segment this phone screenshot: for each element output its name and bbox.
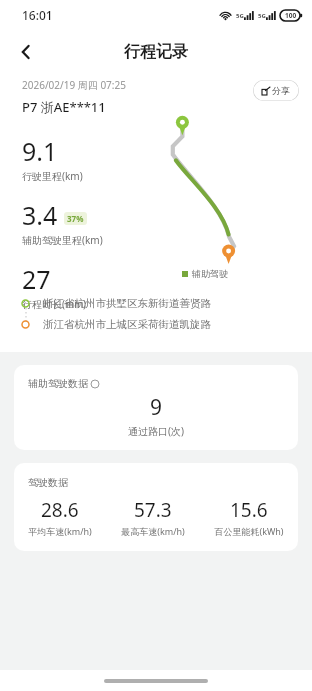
staticText: 28.6 [41,497,79,523]
staticText: 通过路口(次) [128,424,184,438]
staticText: 辅助驾驶里程(km) [22,233,103,247]
staticText: 16:01 [22,7,53,23]
staticText: 9.1 [22,134,58,168]
staticText: 15.6 [230,497,268,523]
staticText: 平均车速(km/h) [28,525,92,537]
button[interactable]: 辅助驾驶数据 [14,365,298,450]
staticText: 27 [22,262,51,296]
staticText: 最高车速(km/h) [121,525,185,537]
staticText: 5G [236,12,244,20]
button[interactable]: 分享 [253,80,299,101]
staticText: 浙江省杭州市拱墅区东新街道善贤路 [43,297,211,310]
button[interactable]: Back [8,34,44,70]
staticText: 9 [150,393,163,422]
staticText: 行驶里程(km) [22,169,83,183]
staticText: 37% [67,213,84,224]
staticText: 5G [258,12,266,20]
staticText: 分享 [272,85,290,96]
staticText: 3.4 [22,198,58,232]
staticText: 驾驶数据 [28,476,68,489]
staticText: 100 [285,11,297,20]
staticText: 行程时长(min) [22,297,87,311]
button[interactable]: 驾驶数据 [14,463,298,551]
staticText: 2026/02/19 周四 07:25 [22,78,126,92]
staticText: 辅助驾驶数据 [28,377,88,390]
staticText: 辅助驾驶 [192,268,228,279]
staticText: 浙江省杭州市上城区采荷街道凯旋路 [43,318,211,331]
staticText: 57.3 [134,497,172,523]
staticText: P7 浙AE***11 [22,98,106,116]
staticText: 行程记录 [124,42,188,62]
staticText: 百公里能耗(kWh) [214,525,284,537]
